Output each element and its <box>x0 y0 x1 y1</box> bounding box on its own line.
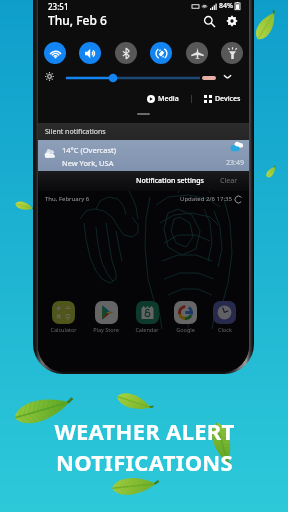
button[interactable]: Devices <box>202 94 243 104</box>
staticText: Google <box>176 326 195 333</box>
button[interactable]: Calendar <box>135 301 159 333</box>
staticText: Calculator <box>50 326 77 333</box>
button[interactable]: Search <box>201 13 217 29</box>
staticText: Play Store <box>93 326 119 333</box>
staticText: 23:51 <box>48 1 69 12</box>
button[interactable]: Play Store <box>93 301 119 333</box>
button[interactable]: Clock <box>213 301 236 333</box>
staticText: Updated 2/6 17:35 <box>180 195 232 203</box>
button[interactable]: Expand <box>222 71 233 82</box>
staticText: WEATHER ALERT <box>54 416 235 446</box>
button[interactable]: Media <box>145 94 181 104</box>
button[interactable]: Clear <box>217 173 241 189</box>
staticText: Notification settings <box>136 176 204 186</box>
staticText: 14°C (Overcast) <box>62 145 116 155</box>
button[interactable]: Settings <box>224 13 240 29</box>
button[interactable]: Sound <box>79 42 101 64</box>
staticText: Thu, Feb 6 <box>48 12 107 28</box>
button[interactable]: Flashlight <box>221 42 243 64</box>
staticText: Clock <box>218 326 232 333</box>
button[interactable]: Notification settings <box>133 173 207 189</box>
button[interactable]: Bluetooth <box>115 42 137 64</box>
button[interactable]: Brightness <box>66 71 216 85</box>
button[interactable]: Auto rotate <box>150 42 172 64</box>
staticText: Devices <box>215 94 241 104</box>
staticText: 23:49 <box>226 158 244 168</box>
button[interactable]: 14°C (Overcast) <box>38 140 249 171</box>
staticText: Silent notifications <box>45 127 106 137</box>
staticText: New York, USA <box>62 158 114 168</box>
staticText: Media <box>158 94 179 104</box>
staticText: Clear <box>220 176 238 186</box>
staticText: Calendar <box>135 326 159 333</box>
staticText: NOTIFICATIONS <box>56 447 233 477</box>
button[interactable]: Calculator <box>50 301 77 333</box>
staticText: 84% <box>219 1 233 11</box>
staticText: Thu, February 6 <box>45 195 90 203</box>
button[interactable]: Wi-Fi <box>44 42 66 64</box>
button[interactable]: Airplane mode <box>186 42 208 64</box>
button[interactable]: Google <box>174 301 197 333</box>
